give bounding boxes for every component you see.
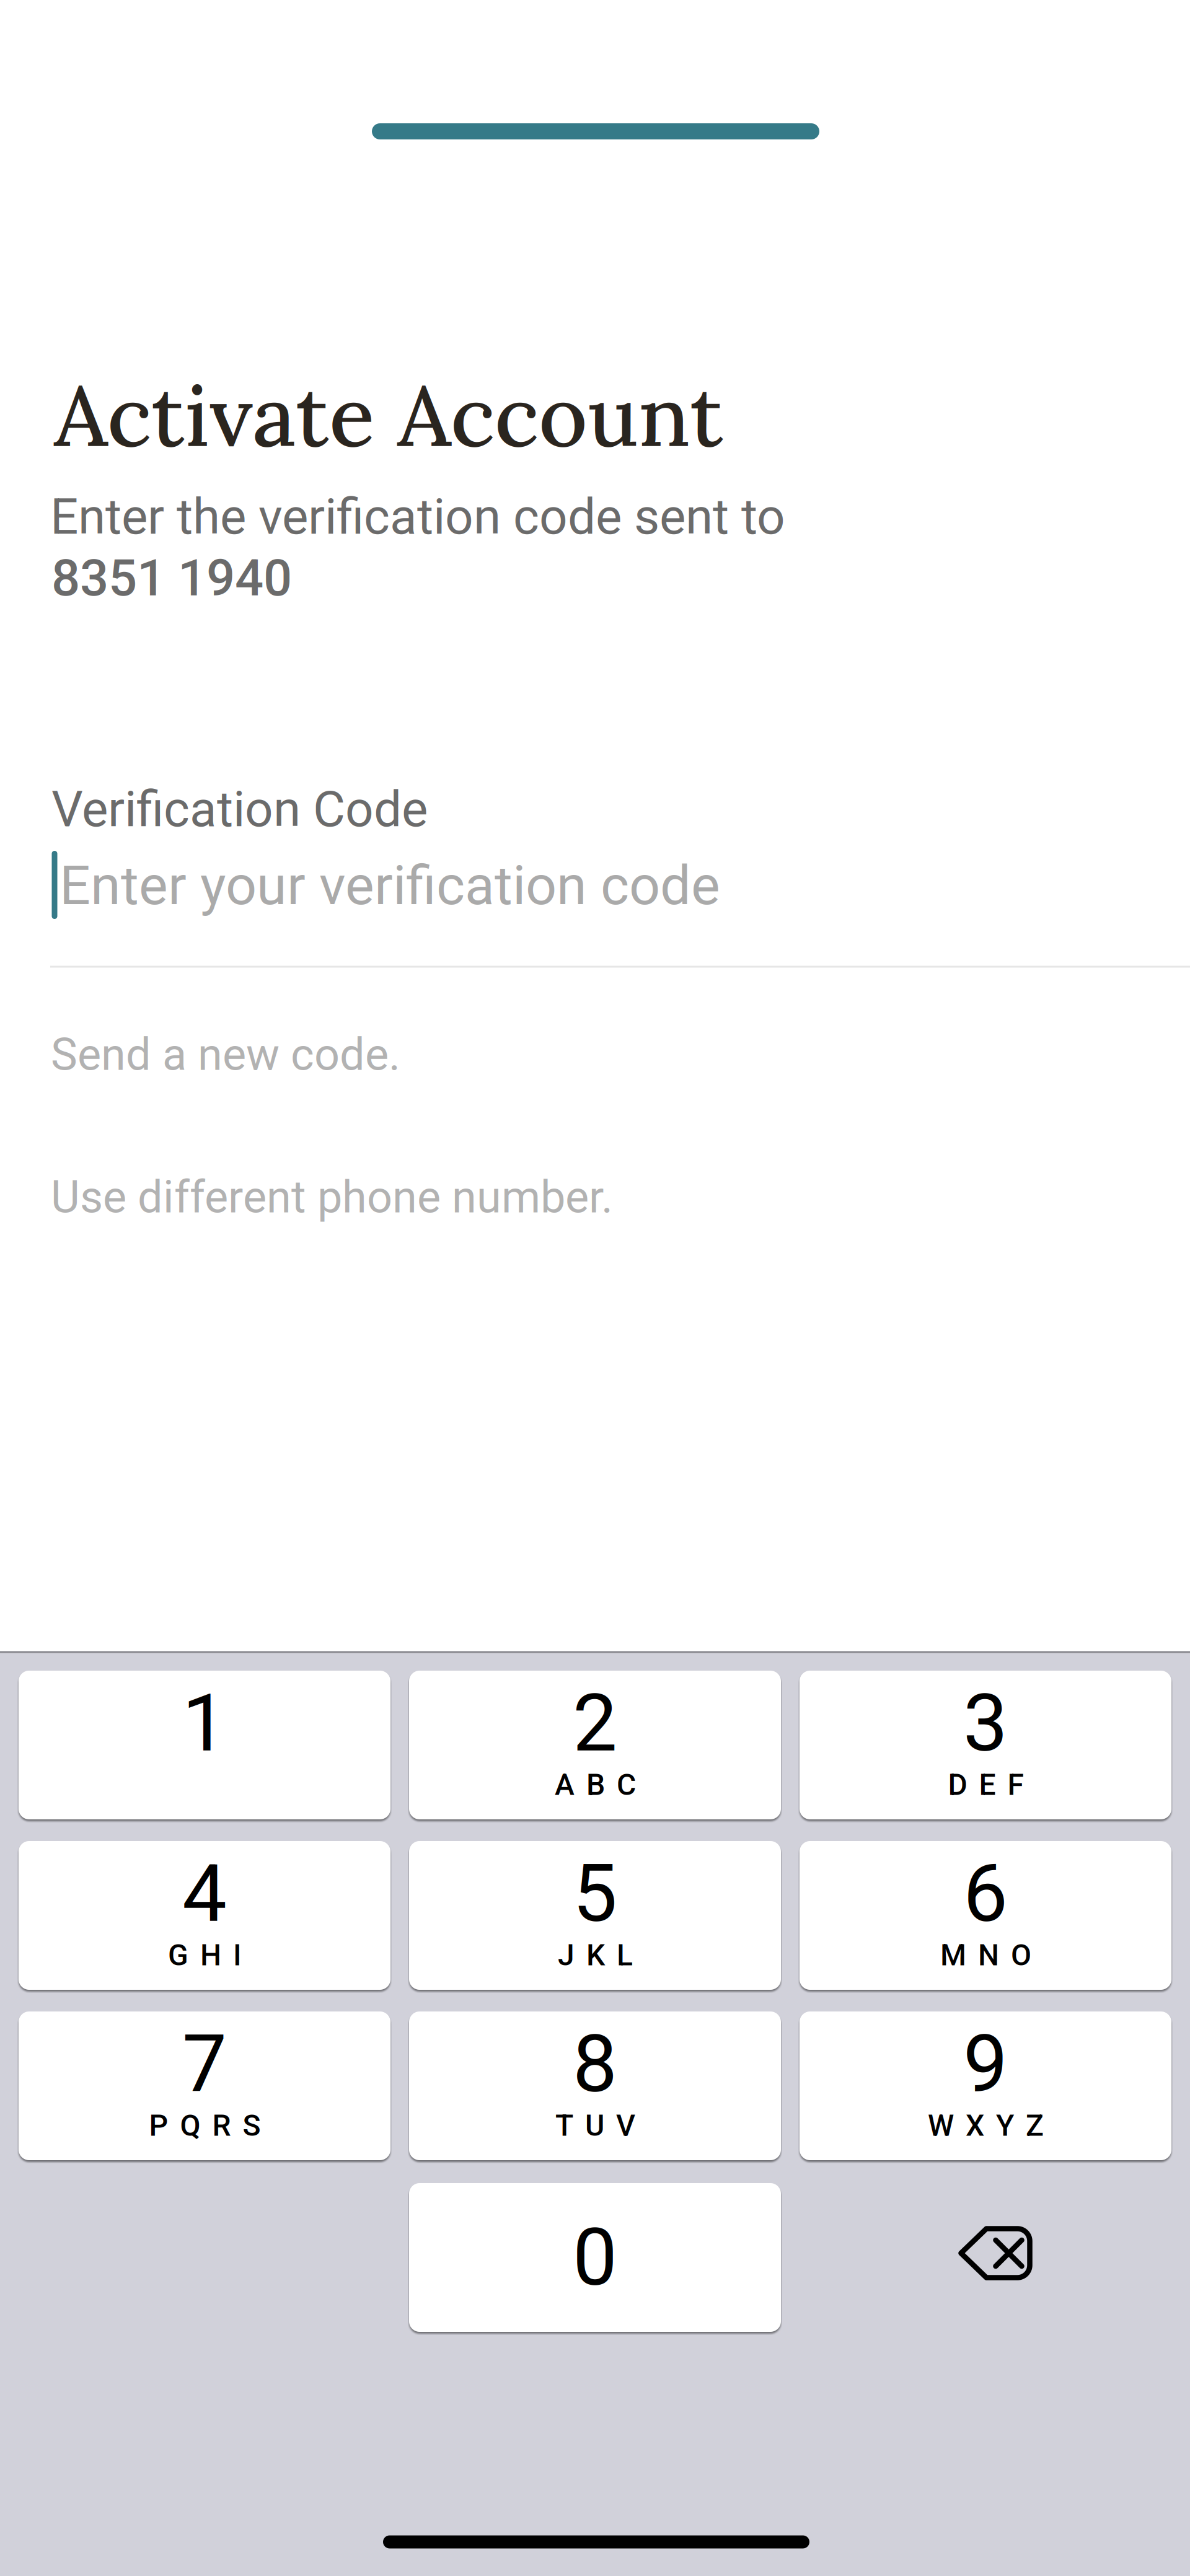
staticText: WXYZ [928,2108,1044,2143]
button[interactable]: 2 [409,1671,781,1819]
button[interactable]: Use different phone number. [51,1160,658,1234]
staticText: Activate Account [54,361,723,469]
staticText: 7 [182,2018,227,2111]
staticText: 9 [963,2018,1008,2111]
staticText: 5 [573,1847,617,1940]
staticText: MNO [940,1938,1031,1972]
staticText: 1 [182,1677,227,1770]
staticText: Enter the verification code sent to [50,488,785,546]
staticText: Use different phone number. [51,1171,613,1223]
staticText: 2 [573,1677,617,1770]
button[interactable]: 9 [800,2011,1171,2160]
staticText: 0 [573,2211,617,2304]
staticText: JKL [558,1938,633,1972]
staticText: Verification Code [51,780,428,838]
button[interactable]: 0 [409,2183,781,2332]
button[interactable]: 1 [19,1671,390,1819]
staticText: ABC [555,1767,636,1802]
staticText: TUV [555,2108,635,2143]
staticText: 8 [573,2018,617,2111]
button[interactable]: 7 [19,2011,390,2160]
staticText: Send a new code. [51,1029,400,1081]
staticText: 4 [182,1847,227,1940]
staticText: GHI [168,1938,242,1972]
staticText: PQRS [149,2108,261,2143]
staticText: Enter your verification code [59,854,720,917]
button[interactable]: 3 [800,1671,1171,1819]
button[interactable]: 5 [409,1841,781,1990]
staticText: 6 [963,1847,1008,1940]
button[interactable]: Delete [800,2183,1171,2332]
button[interactable]: Send a new code. [51,1018,435,1092]
staticText: 3 [963,1677,1008,1770]
button[interactable]: 6 [800,1841,1171,1990]
button[interactable]: 4 [19,1841,390,1990]
staticText: 8351 1940 [51,549,292,608]
button[interactable]: 8 [409,2011,781,2160]
staticText: DEF [948,1767,1024,1802]
